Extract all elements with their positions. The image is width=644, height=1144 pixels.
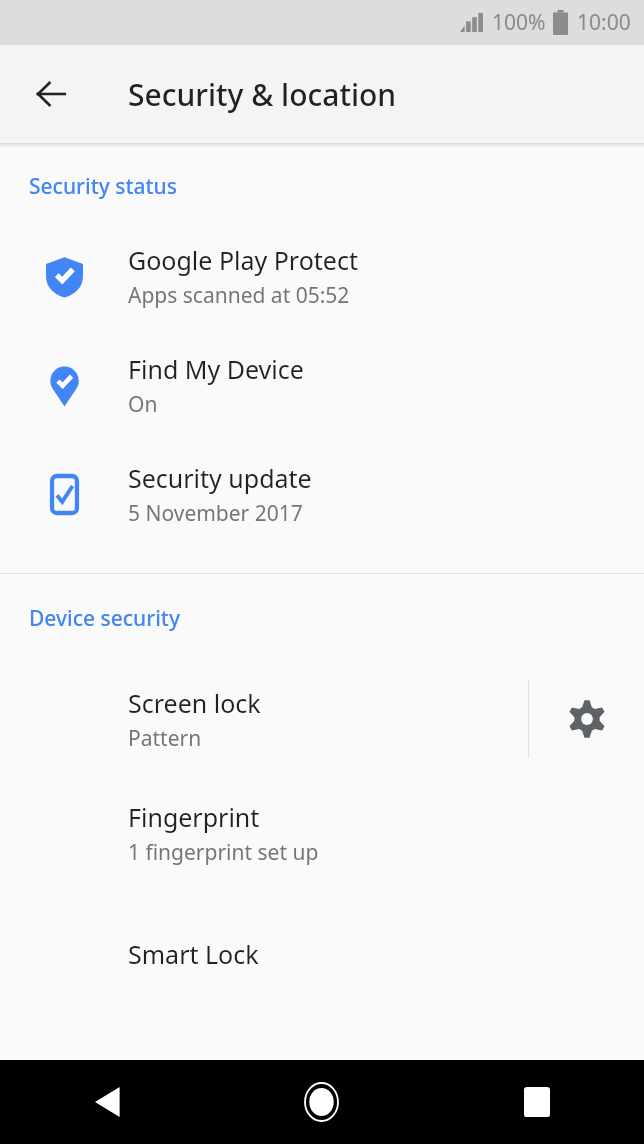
staticText: Pattern	[128, 724, 202, 753]
staticText: Security update	[128, 461, 312, 495]
staticText: Fingerprint	[128, 800, 260, 834]
staticText: Find My Device	[128, 352, 304, 386]
staticText: Smart Lock	[128, 937, 259, 971]
button[interactable]: Recent apps	[429, 1060, 644, 1144]
staticText: Security & location	[128, 74, 397, 115]
staticText: 1 fingerprint set up	[128, 838, 319, 867]
button[interactable]: Find My Device	[0, 352, 644, 419]
staticText: On	[128, 390, 158, 419]
staticText: 10:00	[577, 8, 631, 37]
staticText: Google Play Protect	[128, 243, 358, 277]
button[interactable]: Home	[214, 1060, 429, 1144]
button[interactable]: Back	[0, 1060, 214, 1144]
staticText: Apps scanned at 05:52	[128, 281, 350, 310]
button[interactable]: Screen lock settings	[529, 674, 644, 764]
button[interactable]: Google Play Protect	[0, 243, 644, 310]
button[interactable]: Fingerprint	[0, 800, 644, 867]
button[interactable]: Navigate up	[22, 65, 80, 123]
staticText: Security status	[29, 172, 177, 201]
button[interactable]: Security update	[0, 461, 644, 528]
staticText: 5 November 2017	[128, 499, 303, 528]
button[interactable]: Smart Lock	[0, 937, 644, 971]
staticText: Screen lock	[128, 686, 261, 720]
button[interactable]: Screen lock	[0, 686, 528, 753]
staticText: Device security	[29, 604, 180, 633]
staticText: 100%	[492, 8, 546, 37]
